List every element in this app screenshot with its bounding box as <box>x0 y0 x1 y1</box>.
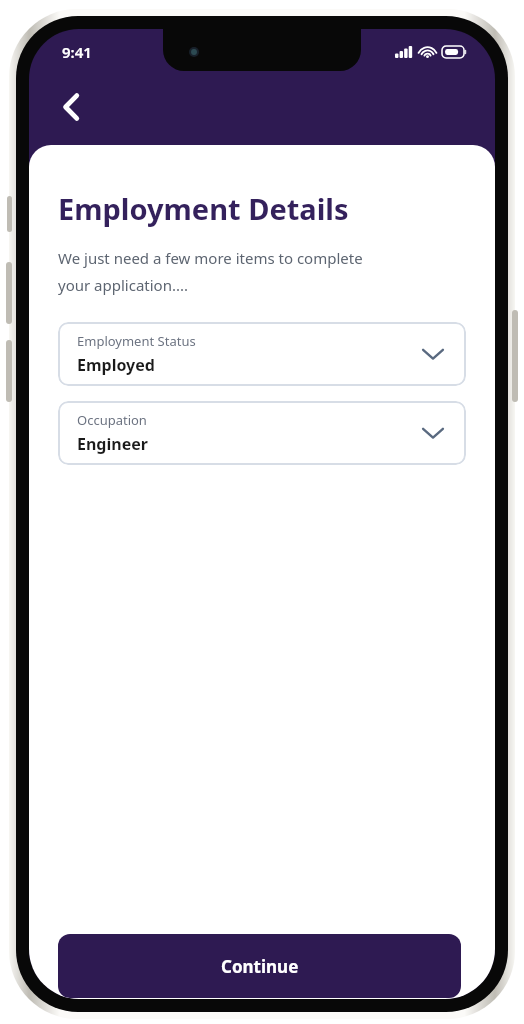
button[interactable]: Back <box>45 81 97 133</box>
button[interactable]: Continue <box>58 934 461 998</box>
staticText: We just need a few more items to complet… <box>58 248 363 296</box>
button[interactable]: Occupation <box>58 401 466 465</box>
staticText: Employed <box>77 354 155 376</box>
staticText: Occupation <box>77 411 147 429</box>
staticText: 9:41 <box>62 42 92 62</box>
staticText: Employment Details <box>58 189 349 228</box>
staticText: Engineer <box>77 433 148 455</box>
button[interactable]: Employment Status <box>58 322 466 386</box>
staticText: Continue <box>221 955 299 978</box>
staticText: Employment Status <box>77 332 196 350</box>
